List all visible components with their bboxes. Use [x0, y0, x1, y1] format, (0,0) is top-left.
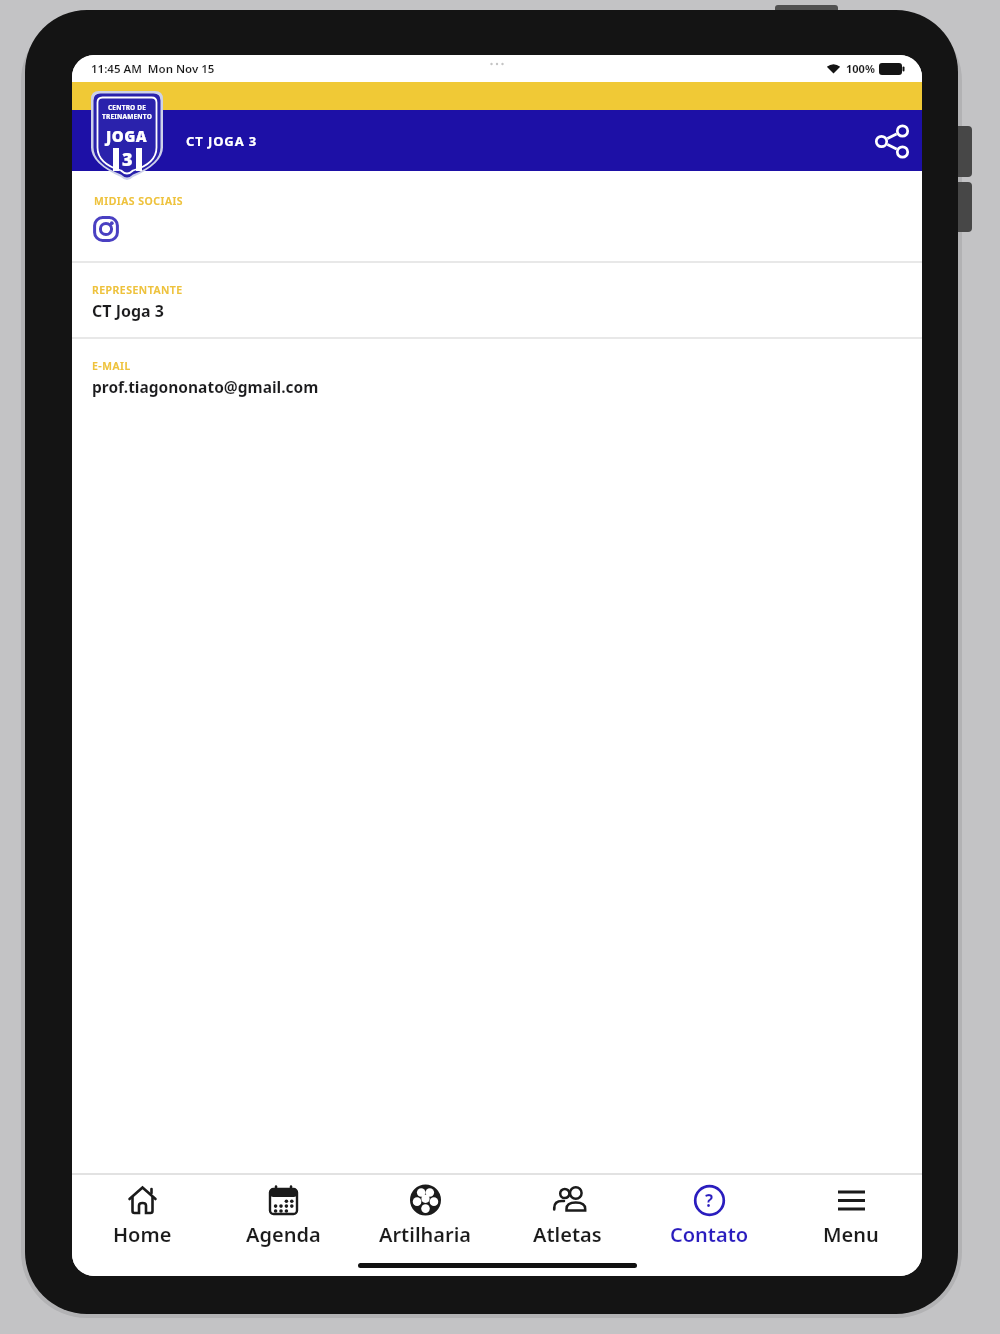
button[interactable]: Atletas	[496, 1175, 638, 1276]
staticText: ?	[705, 1189, 714, 1212]
staticText: 11:45 AM Mon Nov 15	[91, 61, 215, 77]
staticText: Menu	[823, 1221, 879, 1248]
staticText: JOGA	[106, 126, 148, 146]
button[interactable]	[93, 216, 119, 242]
staticText: Home	[113, 1221, 172, 1248]
staticText: CT Joga 3	[92, 300, 164, 322]
staticText: MIDIAS SOCIAIS	[94, 194, 184, 208]
button[interactable]: Artilharia	[354, 1175, 496, 1276]
button[interactable]	[870, 119, 914, 163]
staticText: Atletas	[533, 1221, 602, 1248]
staticText: Contato	[670, 1221, 749, 1248]
staticText: CT JOGA 3	[186, 132, 258, 150]
staticText: prof.tiagononato@gmail.com	[92, 376, 319, 397]
button[interactable]: ?	[638, 1175, 780, 1276]
button[interactable]: Agenda	[213, 1175, 354, 1276]
staticText: CENTRO DE	[108, 103, 147, 112]
button[interactable]: Home	[72, 1175, 213, 1276]
staticText: E-MAIL	[92, 359, 131, 373]
staticText: TREINAMENTO	[102, 112, 152, 121]
button[interactable]: Menu	[780, 1175, 922, 1276]
staticText: 100%	[846, 61, 875, 76]
staticText: Artilharia	[379, 1221, 472, 1248]
staticText: Agenda	[246, 1221, 321, 1248]
staticText: REPRESENTANTE	[92, 283, 183, 297]
staticText: 3	[122, 147, 133, 172]
